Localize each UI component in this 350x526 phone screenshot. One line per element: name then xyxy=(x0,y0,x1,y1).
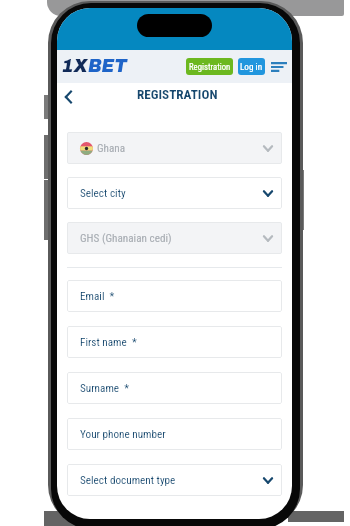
button[interactable]: Ghana xyxy=(67,132,282,164)
button[interactable]: First name * xyxy=(67,326,282,358)
button[interactable]: Menu xyxy=(271,58,287,76)
button[interactable]: Log in xyxy=(238,58,265,75)
button[interactable]: Back xyxy=(57,83,79,111)
staticText: Log in xyxy=(240,61,263,72)
staticText: Email * xyxy=(80,290,115,303)
staticText: REGISTRATION xyxy=(137,87,218,102)
button[interactable]: Email * xyxy=(67,280,282,312)
staticText: BET xyxy=(88,57,127,76)
staticText: Surname * xyxy=(80,382,130,395)
staticText: First name * xyxy=(80,336,137,349)
button[interactable]: Select city xyxy=(67,177,282,209)
staticText: Registration xyxy=(189,62,231,72)
button[interactable]: Registration xyxy=(186,58,233,75)
button[interactable]: Surname * xyxy=(67,372,282,404)
button[interactable]: GHS (Ghanaian cedi) xyxy=(67,222,282,254)
staticText: GHS (Ghanaian cedi) xyxy=(80,232,172,245)
staticText: Select city xyxy=(80,187,126,200)
staticText: Your phone number xyxy=(80,428,166,441)
staticText: Select document type xyxy=(80,474,176,487)
staticText: Ghana xyxy=(97,142,126,155)
button[interactable]: Your phone number xyxy=(67,418,282,450)
staticText: 1X xyxy=(62,57,88,76)
button[interactable]: Select document type xyxy=(67,464,282,496)
